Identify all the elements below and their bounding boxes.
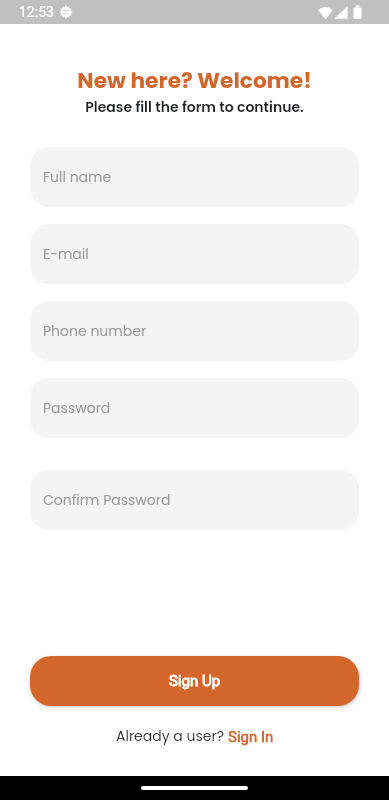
other: Mobile signal <box>334 6 348 19</box>
staticText: Phone number <box>43 321 147 341</box>
other: Developer options <box>59 5 73 19</box>
staticText: 12:53 <box>19 4 54 20</box>
staticText: Sign Up <box>169 672 221 690</box>
staticText: Confirm Password <box>43 490 171 510</box>
button[interactable]: Full name <box>30 147 359 207</box>
button[interactable]: Password <box>30 378 359 438</box>
other: Battery <box>353 5 362 19</box>
staticText: Already a user? <box>116 726 228 746</box>
staticText: E-mail <box>43 244 89 264</box>
other: Wi-Fi signal <box>318 6 333 19</box>
staticText: Please fill the form to continue. <box>0 97 389 117</box>
staticText: Password <box>43 398 111 418</box>
button[interactable]: Sign Up <box>30 656 359 706</box>
staticText: Full name <box>43 167 112 187</box>
button[interactable]: Sign In <box>228 728 274 746</box>
staticText: New here? Welcome! <box>0 65 389 95</box>
button[interactable]: Phone number <box>30 301 359 361</box>
button[interactable]: Confirm Password <box>30 470 359 530</box>
button[interactable]: E-mail <box>30 224 359 284</box>
staticText: Sign In <box>228 728 274 746</box>
